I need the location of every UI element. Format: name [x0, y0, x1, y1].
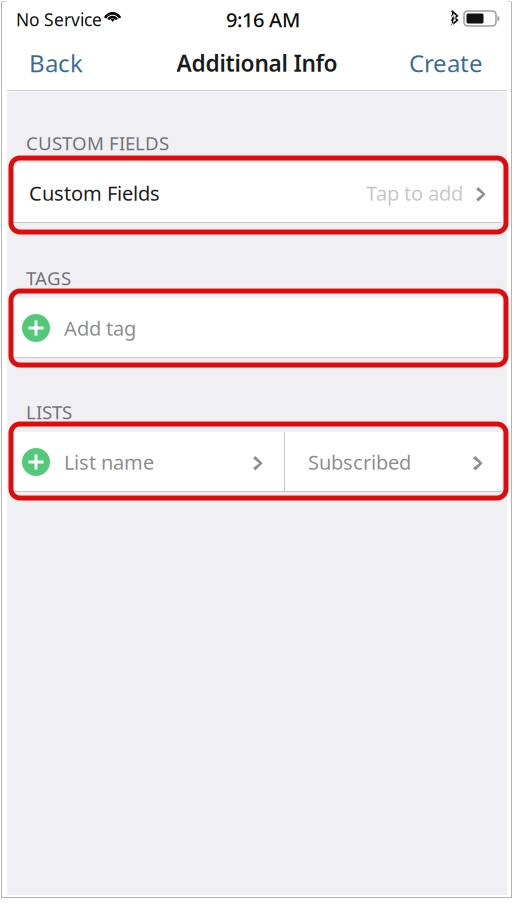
staticText: CUSTOM FIELDS: [26, 131, 169, 155]
staticText: Create: [409, 47, 483, 79]
staticText: Back: [29, 47, 83, 79]
staticText: Additional Info: [176, 48, 337, 78]
staticText: TAGS: [26, 266, 71, 290]
button[interactable]: Subscribed: [285, 432, 502, 491]
staticText: 9:16 AM: [226, 6, 300, 33]
button[interactable]: Add tag: [13, 298, 502, 357]
staticText: Add tag: [64, 315, 136, 341]
staticText: No Service: [16, 8, 102, 31]
button[interactable]: Create: [403, 41, 493, 85]
staticText: LISTS: [26, 400, 72, 424]
staticText: List name: [64, 449, 154, 475]
button[interactable]: Back: [19, 41, 101, 85]
staticText: Subscribed: [308, 449, 411, 475]
button[interactable]: List name: [13, 432, 284, 491]
staticText: Custom Fields: [29, 180, 160, 206]
staticText: Tap to add: [366, 180, 463, 206]
button[interactable]: Custom Fields: [13, 163, 502, 222]
